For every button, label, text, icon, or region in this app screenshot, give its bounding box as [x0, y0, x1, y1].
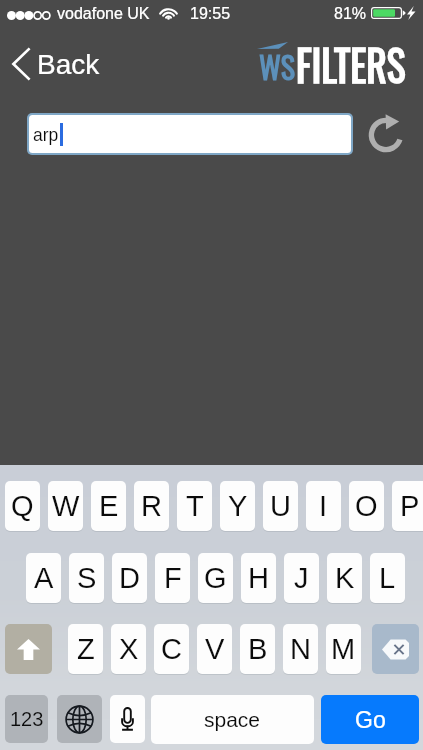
staticText: 19:55 [190, 5, 231, 23]
button[interactable]: Go [321, 695, 419, 744]
staticText: T [186, 490, 204, 522]
staticText: E [99, 490, 119, 522]
staticText: FILTERS [296, 32, 406, 90]
staticText: K [335, 562, 355, 594]
staticText: space [204, 708, 261, 731]
button[interactable]: Q [5, 481, 40, 532]
button[interactable]: U [263, 481, 298, 532]
button[interactable]: I [306, 481, 341, 532]
staticText: X [119, 633, 139, 665]
button[interactable]: R [134, 481, 169, 532]
staticText: W [52, 490, 80, 522]
staticText: L [379, 562, 396, 594]
staticText: B [248, 633, 268, 665]
staticText: Go [355, 707, 386, 733]
staticText: J [294, 562, 309, 594]
button[interactable]: Back [6, 41, 110, 87]
button[interactable]: B [240, 624, 275, 675]
button[interactable]: WS [255, 38, 413, 96]
staticText: H [248, 562, 269, 594]
button[interactable]: Z [68, 624, 103, 675]
button[interactable]: T [177, 481, 212, 532]
staticText: G [204, 562, 227, 594]
button[interactable]: F [155, 553, 190, 604]
staticText: WS [259, 44, 295, 88]
staticText: O [355, 490, 378, 522]
button[interactable]: K [327, 553, 362, 604]
button[interactable]: arp [29, 115, 351, 153]
staticText: 81% [334, 5, 367, 23]
button[interactable]: Dictate [110, 695, 145, 743]
staticText: U [270, 490, 291, 522]
button[interactable]: 123 [5, 695, 48, 743]
button[interactable]: L [370, 553, 405, 604]
button[interactable]: C [154, 624, 189, 675]
staticText: A [34, 562, 54, 594]
button[interactable]: space [151, 695, 314, 744]
button[interactable]: M [326, 624, 361, 675]
button[interactable]: Shift [5, 624, 52, 674]
staticText: M [331, 633, 356, 665]
staticText: F [164, 562, 182, 594]
staticText: I [319, 490, 328, 522]
button[interactable]: W [48, 481, 83, 532]
button[interactable]: S [69, 553, 104, 604]
staticText: Q [11, 490, 34, 522]
button[interactable]: G [198, 553, 233, 604]
button[interactable]: N [283, 624, 318, 675]
button[interactable]: Reload [362, 110, 410, 160]
button[interactable]: V [197, 624, 232, 675]
staticText: V [205, 633, 225, 665]
staticText: P [400, 490, 420, 522]
staticText: R [141, 490, 162, 522]
staticText: Back [37, 49, 100, 80]
button[interactable]: J [284, 553, 319, 604]
button[interactable]: X [111, 624, 146, 675]
button[interactable]: H [241, 553, 276, 604]
button[interactable]: D [112, 553, 147, 604]
button[interactable]: E [91, 481, 126, 532]
staticText: Z [77, 633, 95, 665]
button[interactable]: Change keyboard language [57, 695, 102, 743]
button[interactable]: Backspace [372, 624, 419, 674]
staticText: vodafone UK [57, 5, 150, 23]
staticText: S [77, 562, 97, 594]
staticText: C [161, 633, 182, 665]
button[interactable]: P [392, 481, 423, 532]
staticText: N [290, 633, 311, 665]
button[interactable]: A [26, 553, 61, 604]
staticText: Y [228, 490, 248, 522]
staticText: D [119, 562, 140, 594]
button[interactable]: O [349, 481, 384, 532]
staticText: arp [33, 125, 59, 145]
button[interactable]: Y [220, 481, 255, 532]
staticText: 123 [10, 708, 44, 730]
